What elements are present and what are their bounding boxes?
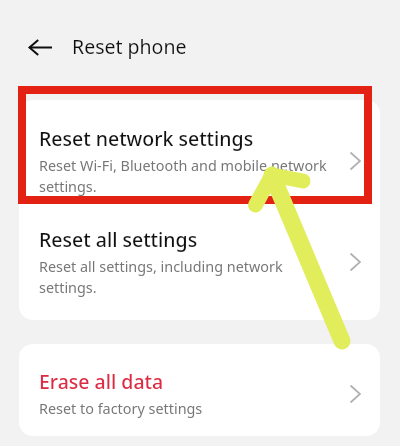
staticText: Reset phone [72,33,187,60]
button[interactable]: Back [17,24,63,70]
staticText: Reset to factory settings [39,399,203,419]
staticText: Reset network settings [39,125,254,152]
staticText: Reset all settings, including network se… [39,257,283,297]
button[interactable]: Reset network settings [19,100,380,209]
button[interactable]: Erase all data [19,344,380,436]
staticText: Reset all settings [39,226,198,253]
staticText: Reset Wi-Fi, Bluetooth and mobile networ… [39,156,327,196]
button[interactable]: Reset all settings [19,209,380,320]
staticText: Erase all data [39,368,164,395]
